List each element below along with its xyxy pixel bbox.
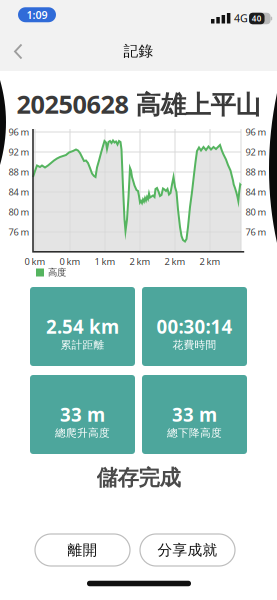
staticText: 92 m bbox=[8, 146, 29, 158]
staticText: 2.54 km bbox=[46, 314, 119, 339]
staticText: 88 m bbox=[8, 166, 29, 178]
staticText: 96 m bbox=[8, 126, 29, 138]
staticText: 1:09 bbox=[26, 8, 47, 22]
staticText: 76 m bbox=[8, 226, 29, 238]
button[interactable]: Back bbox=[0, 0, 36, 44]
button[interactable]: 分享成就 bbox=[140, 534, 235, 566]
staticText: 92 m bbox=[245, 146, 266, 158]
staticText: 2 km bbox=[164, 255, 185, 268]
staticText: 76 m bbox=[245, 226, 266, 238]
staticText: 88 m bbox=[245, 166, 266, 178]
staticText: 儲存完成 bbox=[96, 465, 180, 491]
staticText: 4G bbox=[234, 11, 248, 25]
staticText: 記錄 bbox=[123, 42, 153, 60]
staticText: 33 m bbox=[60, 402, 105, 427]
staticText: 80 m bbox=[8, 206, 29, 218]
button[interactable]: 離開 bbox=[35, 534, 130, 566]
staticText: 20250628 高雄上平山 bbox=[16, 87, 260, 121]
staticText: 96 m bbox=[245, 126, 266, 138]
staticText: 1 km bbox=[94, 255, 115, 268]
staticText: 84 m bbox=[245, 186, 266, 198]
staticText: 80 m bbox=[245, 206, 266, 218]
staticText: 總下降高度 bbox=[167, 426, 222, 439]
staticText: 2 km bbox=[199, 255, 220, 268]
staticText: 花費時間 bbox=[172, 338, 216, 351]
staticText: 總爬升高度 bbox=[55, 426, 110, 439]
staticText: 離開 bbox=[67, 541, 97, 559]
staticText: 高度 bbox=[48, 267, 66, 278]
staticText: 40 bbox=[252, 13, 262, 24]
staticText: 分享成就 bbox=[157, 541, 217, 559]
staticText: 84 m bbox=[8, 186, 29, 198]
staticText: 0 km bbox=[59, 255, 80, 268]
staticText: 33 m bbox=[172, 402, 217, 427]
staticText: 00:30:14 bbox=[156, 314, 232, 339]
staticText: 2 km bbox=[129, 255, 150, 268]
staticText: 累計距離 bbox=[60, 338, 104, 351]
staticText: 0 km bbox=[24, 255, 45, 268]
